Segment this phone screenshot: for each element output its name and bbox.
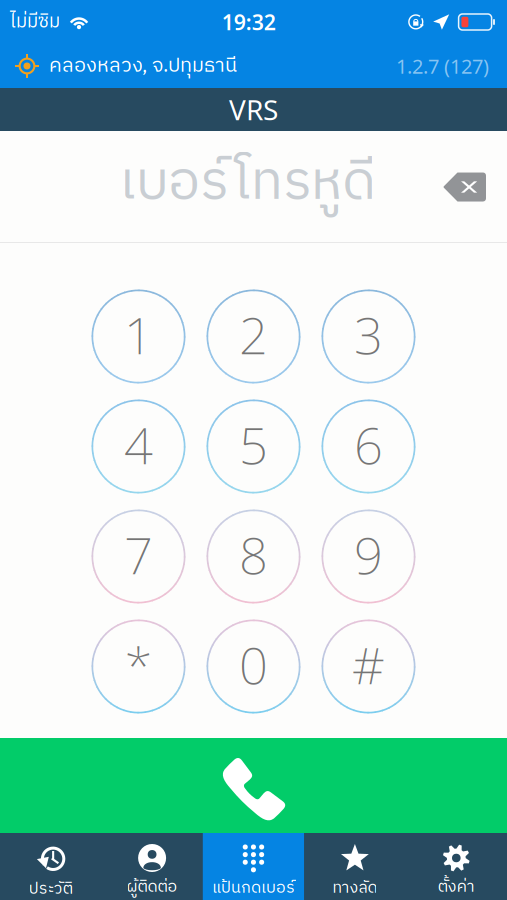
staticText: 7 [124, 521, 153, 588]
staticText: ประวัติ [29, 876, 73, 900]
button[interactable]: * [81, 611, 196, 721]
staticText: # [352, 631, 385, 698]
staticText: 8 [239, 521, 268, 588]
staticText: 1 [124, 301, 153, 368]
button[interactable]: 5 [196, 391, 311, 501]
staticText: แป้นกดเบอร์ [212, 875, 295, 900]
button[interactable]: 7 [81, 501, 196, 611]
button[interactable]: คลองหลวง, จ.ปทุมธานี [0, 44, 507, 88]
staticText: * [124, 631, 152, 698]
button[interactable]: Delete [443, 171, 507, 202]
button[interactable]: 1 [81, 281, 196, 391]
staticText: 0 [239, 631, 268, 698]
staticText: ผู้ติดต่อ [127, 874, 178, 900]
staticText: 4 [124, 411, 153, 478]
staticText: 1.2.7 (127) [396, 53, 489, 79]
button[interactable]: แป้นกดเบอร์ [203, 833, 304, 900]
button[interactable]: 9 [311, 501, 426, 611]
staticText: 3 [354, 301, 383, 368]
button[interactable]: 4 [81, 391, 196, 501]
button[interactable]: 6 [311, 391, 426, 501]
button[interactable]: ผู้ติดต่อ [101, 833, 203, 900]
staticText: ไม่มีซิม [10, 7, 60, 37]
staticText: ตั้งค่า [438, 874, 475, 900]
staticText: 5 [239, 411, 268, 478]
button[interactable]: Call [0, 738, 507, 833]
staticText: ทางลัด [332, 875, 377, 900]
staticText: 2 [239, 301, 268, 368]
button[interactable]: ประวัติ [0, 833, 101, 900]
button[interactable]: 2 [196, 281, 311, 391]
staticText: 19:32 [222, 8, 276, 36]
staticText: เบอร์โทรหูดี [119, 139, 376, 227]
staticText: 6 [354, 411, 383, 478]
staticText: คลองหลวง, จ.ปทุมธานี [49, 49, 237, 82]
button[interactable]: 0 [196, 611, 311, 721]
staticText: 9 [354, 521, 383, 588]
button[interactable]: 8 [196, 501, 311, 611]
button[interactable]: 3 [311, 281, 426, 391]
button[interactable]: # [311, 611, 426, 721]
staticText: VRS [229, 91, 278, 128]
button[interactable]: ทางลัด [304, 833, 406, 900]
button[interactable]: ตั้งค่า [406, 833, 507, 900]
